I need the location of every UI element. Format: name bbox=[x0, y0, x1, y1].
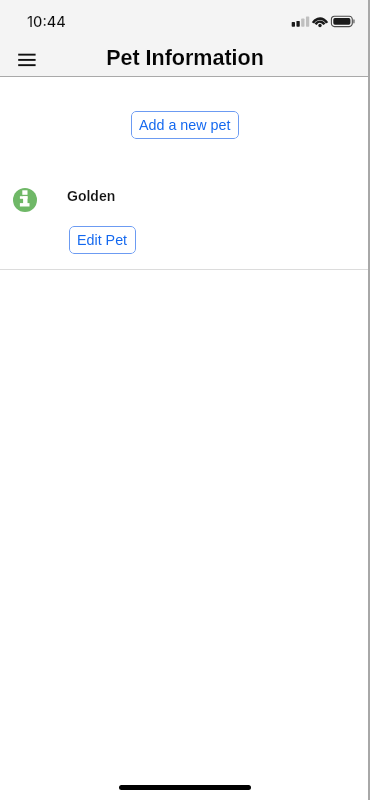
button[interactable]: Add a new pet bbox=[131, 111, 239, 139]
button[interactable]: Menu bbox=[11, 43, 41, 73]
button[interactable]: Edit Pet bbox=[69, 226, 136, 254]
other: Info bbox=[13, 188, 37, 212]
staticText: Golden bbox=[67, 188, 116, 204]
staticText: 10:44 bbox=[27, 13, 66, 31]
staticText: Edit Pet bbox=[77, 232, 128, 248]
staticText: Pet Information bbox=[106, 46, 264, 70]
staticText: Add a new pet bbox=[139, 117, 231, 133]
